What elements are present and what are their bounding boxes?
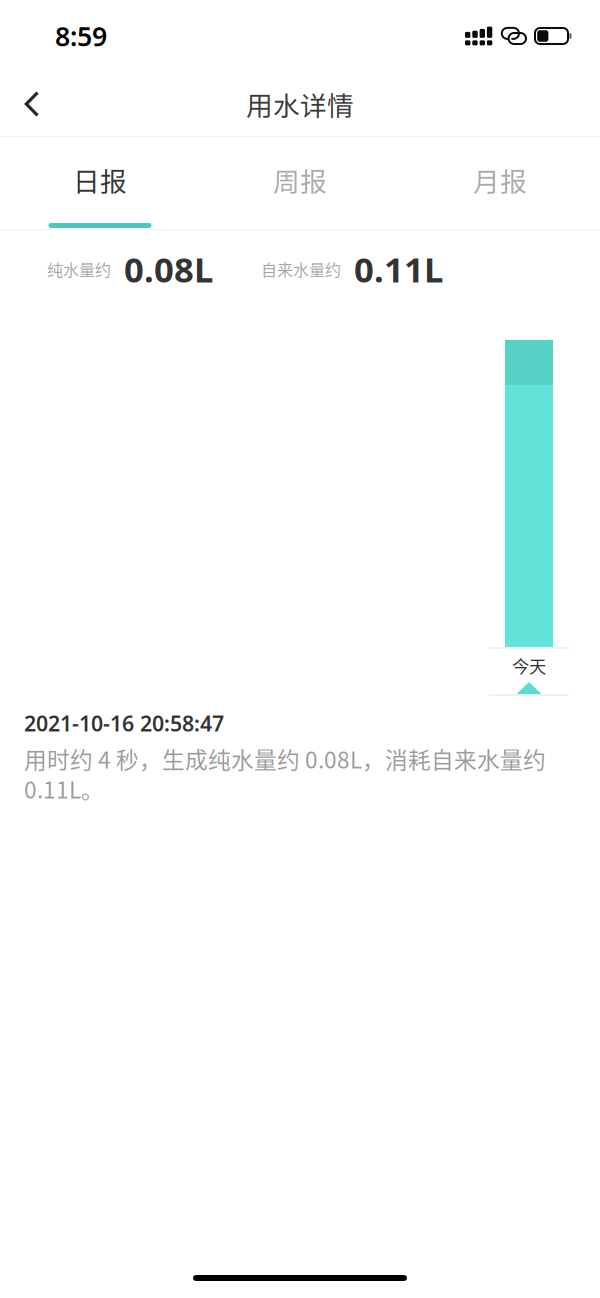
staticText: 0.11L: [354, 246, 443, 292]
button[interactable]: 日报: [0, 137, 200, 229]
button[interactable]: 月报: [400, 137, 600, 229]
button[interactable]: 周报: [200, 137, 400, 229]
staticText: 用时约 4 秒，生成纯水量约 0.08L，消耗自来水量约 0.11L。: [24, 742, 546, 805]
staticText: 月报: [473, 161, 527, 199]
staticText: 2021-10-16 20:58:47: [24, 709, 224, 737]
staticText: 纯水量约: [47, 257, 111, 281]
staticText: 今天: [512, 653, 546, 678]
staticText: 自来水量约: [261, 257, 341, 281]
staticText: 周报: [273, 161, 327, 199]
staticText: 日报: [73, 161, 127, 199]
staticText: 用水详情: [246, 85, 354, 123]
button[interactable]: Back: [2, 73, 62, 135]
staticText: 8:59: [55, 18, 107, 54]
staticText: 0.08L: [124, 246, 213, 292]
